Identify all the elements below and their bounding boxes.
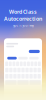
- staticText: Autocorrection: [4, 15, 42, 22]
- staticText: Type it your way: [12, 24, 33, 27]
- staticText: Word Class: [9, 8, 37, 15]
